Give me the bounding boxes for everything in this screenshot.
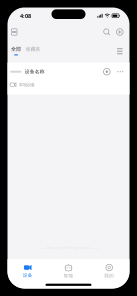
button[interactable]: 设备名称 [7, 62, 129, 94]
staticText: 全部 [11, 46, 21, 52]
staticText: 本地设备 [19, 82, 35, 87]
staticText: 设备名称 [25, 69, 45, 75]
button[interactable]: 收藏夹 [23, 44, 43, 55]
button[interactable]: Add device [113, 24, 126, 39]
staticText: 设备 [23, 272, 33, 278]
button[interactable]: Sort [113, 44, 126, 58]
button[interactable]: 全部 [9, 44, 23, 55]
button[interactable]: Search [100, 24, 113, 39]
staticText: 智能 [63, 273, 73, 278]
button[interactable]: 设备 [7, 262, 48, 281]
button[interactable]: Device groups [8, 24, 21, 39]
button[interactable]: 智能 [48, 262, 89, 281]
staticText: 我的 [104, 273, 114, 278]
staticText: 4:08 [20, 12, 31, 19]
button[interactable]: 我的 [89, 262, 129, 281]
staticText: 收藏夹 [25, 46, 40, 52]
